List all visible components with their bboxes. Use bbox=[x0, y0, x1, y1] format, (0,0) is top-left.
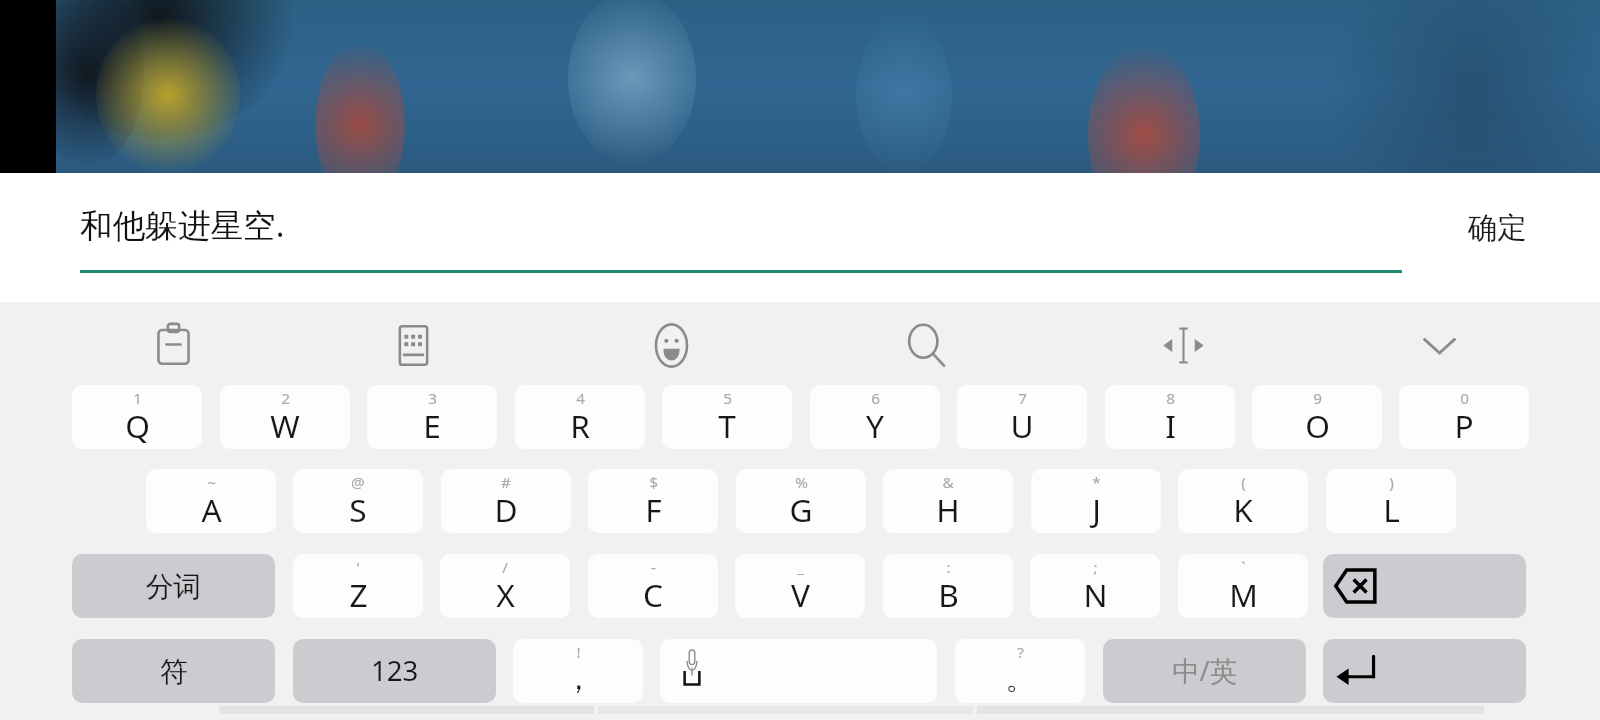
staticText: _ bbox=[797, 557, 804, 578]
button[interactable]: Hide keyboard bbox=[1398, 304, 1480, 386]
staticText: 。 bbox=[1005, 660, 1036, 699]
button[interactable]: ! bbox=[513, 639, 643, 703]
button[interactable]: Backspace bbox=[1323, 554, 1526, 618]
staticText: L bbox=[1383, 488, 1400, 531]
staticText: A bbox=[201, 488, 222, 531]
staticText: / bbox=[502, 557, 508, 578]
staticText: 分词 bbox=[146, 569, 202, 604]
staticText: Q bbox=[125, 404, 150, 447]
staticText: O bbox=[1305, 404, 1330, 447]
staticText: 4 bbox=[576, 388, 585, 409]
staticText: 6 bbox=[871, 388, 880, 409]
button[interactable]: 中/英 bbox=[1103, 639, 1306, 703]
staticText: ? bbox=[1017, 642, 1024, 663]
button[interactable]: ; bbox=[1030, 554, 1160, 618]
button[interactable]: 6 bbox=[810, 385, 940, 449]
staticText: M bbox=[1229, 573, 1258, 616]
button[interactable]: * bbox=[1031, 469, 1161, 533]
button[interactable]: 123 bbox=[293, 639, 496, 703]
staticText: X bbox=[496, 573, 515, 616]
button[interactable]: 确定 bbox=[1449, 200, 1547, 257]
button[interactable]: : bbox=[883, 554, 1013, 618]
staticText: % bbox=[795, 472, 808, 493]
button[interactable]: 9 bbox=[1252, 385, 1382, 449]
button[interactable]: / bbox=[440, 554, 570, 618]
staticText: ( bbox=[1241, 472, 1246, 493]
staticText: N bbox=[1083, 573, 1108, 616]
staticText: I bbox=[1165, 404, 1176, 447]
staticText: 1 bbox=[133, 388, 142, 409]
staticText: B bbox=[938, 573, 959, 616]
button[interactable]: 4 bbox=[515, 385, 645, 449]
staticText: ' bbox=[356, 557, 360, 578]
staticText: 中/英 bbox=[1172, 652, 1238, 690]
button[interactable]: 5 bbox=[662, 385, 792, 449]
button[interactable]: $ bbox=[588, 469, 718, 533]
staticText: S bbox=[349, 488, 367, 531]
button[interactable]: % bbox=[736, 469, 866, 533]
button[interactable]: Keyboard layout bbox=[372, 304, 454, 386]
button[interactable]: 1 bbox=[72, 385, 202, 449]
staticText: ~ bbox=[207, 472, 216, 493]
staticText: U bbox=[1010, 404, 1034, 447]
button[interactable]: _ bbox=[735, 554, 865, 618]
button[interactable]: Enter bbox=[1323, 639, 1526, 703]
staticText: J bbox=[1092, 488, 1101, 531]
button[interactable]: ) bbox=[1326, 469, 1456, 533]
button[interactable]: Clipboard bbox=[132, 304, 214, 386]
button[interactable]: 0 bbox=[1399, 385, 1529, 449]
staticText: : bbox=[946, 557, 951, 578]
staticText: K bbox=[1233, 488, 1253, 531]
staticText: E bbox=[423, 404, 441, 447]
staticText: ! bbox=[576, 642, 581, 663]
button[interactable]: ? bbox=[955, 639, 1085, 703]
staticText: C bbox=[643, 573, 663, 616]
staticText: # bbox=[501, 472, 511, 493]
button[interactable]: 2 bbox=[220, 385, 350, 449]
staticText: - bbox=[651, 557, 656, 578]
staticText: 7 bbox=[1018, 388, 1027, 409]
staticText: P bbox=[1454, 404, 1474, 447]
staticText: F bbox=[645, 488, 662, 531]
staticText: & bbox=[942, 472, 954, 493]
button[interactable]: ( bbox=[1178, 469, 1308, 533]
button[interactable]: 符 bbox=[72, 639, 275, 703]
staticText: 和他躲进星空. bbox=[80, 202, 285, 247]
button[interactable]: 和他躲进星空. bbox=[80, 202, 1402, 273]
staticText: Z bbox=[349, 573, 368, 616]
button[interactable]: & bbox=[883, 469, 1013, 533]
staticText: ， bbox=[563, 660, 594, 699]
staticText: T bbox=[718, 404, 736, 447]
staticText: @ bbox=[351, 472, 365, 493]
button[interactable]: ' bbox=[293, 554, 423, 618]
staticText: G bbox=[789, 488, 813, 531]
staticText: 确定 bbox=[1468, 210, 1528, 247]
staticText: W bbox=[270, 404, 300, 447]
button[interactable]: - bbox=[588, 554, 718, 618]
button[interactable]: 8 bbox=[1105, 385, 1235, 449]
staticText: R bbox=[570, 404, 590, 447]
button[interactable]: ` bbox=[1178, 554, 1308, 618]
button[interactable]: Search bbox=[886, 304, 968, 386]
button[interactable]: 3 bbox=[367, 385, 497, 449]
staticText: 123 bbox=[371, 652, 419, 690]
staticText: ` bbox=[1241, 557, 1246, 578]
button[interactable]: 分词 bbox=[72, 554, 275, 618]
staticText: 0 bbox=[1460, 388, 1469, 409]
button[interactable]: ~ bbox=[146, 469, 276, 533]
button[interactable]: # bbox=[441, 469, 571, 533]
button[interactable]: Space bbox=[660, 639, 937, 703]
staticText: 3 bbox=[428, 388, 437, 409]
button[interactable]: @ bbox=[293, 469, 423, 533]
staticText: H bbox=[936, 488, 960, 531]
staticText: 符 bbox=[160, 654, 188, 689]
button[interactable]: Move cursor bbox=[1142, 304, 1224, 386]
staticText: D bbox=[494, 488, 518, 531]
staticText: ) bbox=[1389, 472, 1394, 493]
button[interactable]: 7 bbox=[957, 385, 1087, 449]
staticText: $ bbox=[649, 472, 658, 493]
staticText: * bbox=[1092, 472, 1101, 493]
staticText: 9 bbox=[1313, 388, 1322, 409]
staticText: Y bbox=[866, 404, 884, 447]
button[interactable]: Emoji bbox=[630, 304, 712, 386]
